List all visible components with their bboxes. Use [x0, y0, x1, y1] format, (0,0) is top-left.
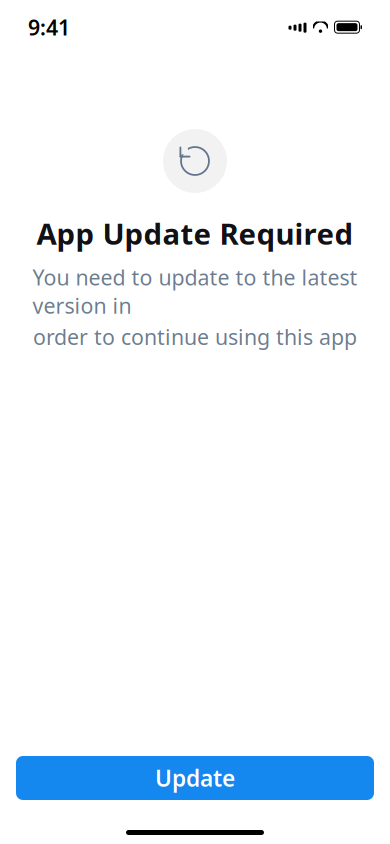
staticText: App Update Required: [36, 214, 353, 253]
staticText: You need to update to the latest version…: [32, 263, 357, 320]
button[interactable]: Update: [16, 756, 374, 800]
staticText: Update: [155, 763, 235, 793]
staticText: order to continue using this app: [33, 323, 357, 351]
staticText: 9:41: [28, 13, 70, 41]
